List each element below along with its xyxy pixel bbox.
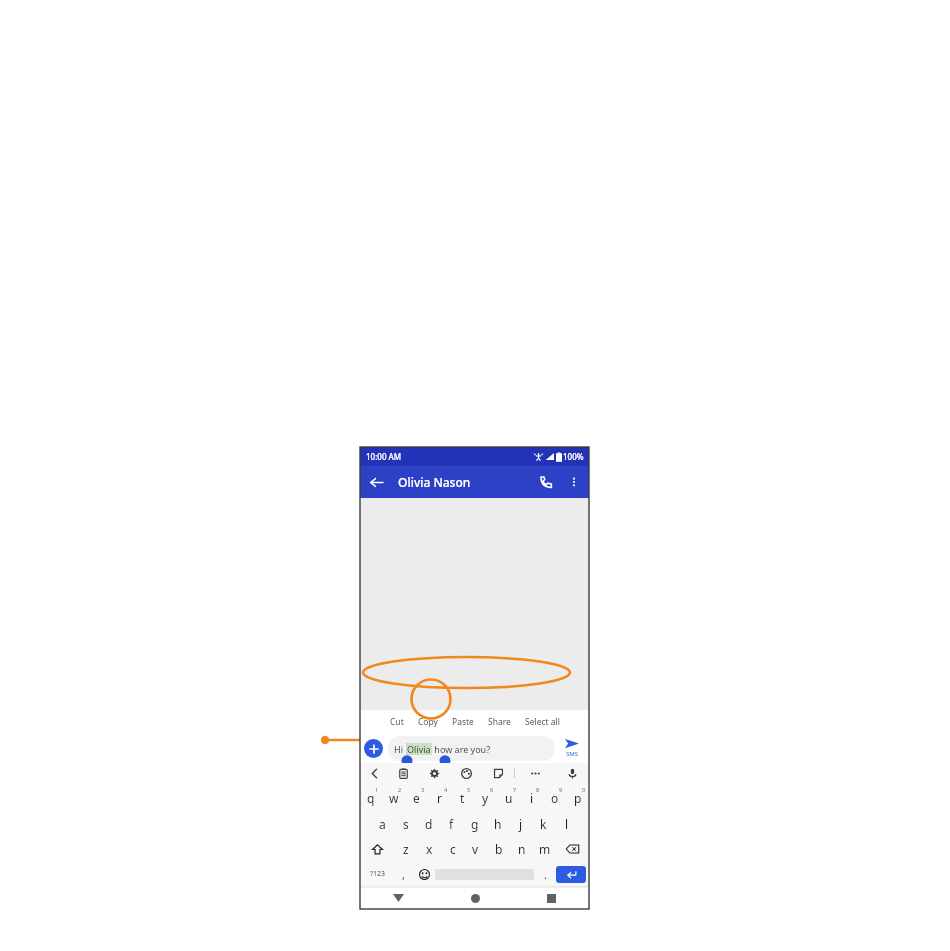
- staticText: 0: [582, 786, 586, 793]
- button[interactable]: n: [510, 838, 533, 860]
- button[interactable]: Previous: [360, 763, 388, 783]
- button[interactable]: h: [486, 813, 509, 835]
- button[interactable]: Sticker: [482, 763, 514, 783]
- button[interactable]: x: [418, 838, 441, 860]
- button[interactable]: Recent apps: [513, 887, 589, 909]
- button[interactable]: Back: [360, 466, 392, 498]
- button[interactable]: Clipboard: [388, 763, 418, 783]
- staticText: Copy: [418, 716, 438, 728]
- button[interactable]: f: [440, 813, 463, 835]
- button[interactable]: Backspace: [556, 838, 589, 860]
- staticText: how are you?: [432, 743, 491, 755]
- button[interactable]: e: [405, 785, 428, 810]
- button[interactable]: k: [532, 813, 555, 835]
- button[interactable]: Settings: [418, 763, 450, 783]
- staticText: a: [379, 816, 386, 832]
- staticText: ,: [402, 867, 405, 882]
- staticText: i: [530, 790, 534, 806]
- staticText: 100%: [563, 451, 584, 462]
- button[interactable]: y: [474, 785, 497, 810]
- staticText: Hi: [394, 743, 406, 755]
- button[interactable]: s: [394, 813, 417, 835]
- staticText: 10:00 AM: [366, 451, 402, 462]
- staticText: b: [495, 841, 503, 857]
- button[interactable]: Home: [437, 887, 513, 909]
- staticText: d: [425, 816, 433, 832]
- button[interactable]: Cut: [383, 712, 411, 732]
- staticText: 5: [467, 786, 471, 793]
- button[interactable]: c: [441, 838, 464, 860]
- button[interactable]: j: [509, 813, 532, 835]
- button[interactable]: t: [451, 785, 474, 810]
- button[interactable]: More: [515, 763, 555, 783]
- button[interactable]: .: [534, 864, 556, 884]
- staticText: 8: [536, 786, 540, 793]
- staticText: g: [471, 816, 479, 832]
- staticText: Select all: [525, 716, 560, 728]
- button[interactable]: Voice input: [555, 763, 589, 783]
- staticText: l: [565, 816, 569, 832]
- staticText: e: [413, 790, 420, 806]
- staticText: 2: [398, 786, 402, 793]
- button[interactable]: Theme: [450, 763, 482, 783]
- button[interactable]: Call: [531, 467, 561, 497]
- staticText: t: [460, 790, 465, 806]
- staticText: 3: [421, 786, 425, 793]
- staticText: 6: [490, 786, 494, 793]
- staticText: Olivia: [407, 743, 431, 755]
- staticText: x: [426, 841, 433, 857]
- button[interactable]: l: [555, 813, 578, 835]
- staticText: 4: [444, 786, 448, 793]
- button[interactable]: Send SMS: [559, 739, 585, 758]
- staticText: k: [540, 816, 547, 832]
- button[interactable]: v: [464, 838, 487, 860]
- button[interactable]: ,: [393, 864, 413, 884]
- staticText: c: [450, 841, 456, 857]
- staticText: Share: [488, 716, 511, 728]
- staticText: .: [544, 867, 547, 882]
- staticText: p: [574, 790, 582, 806]
- staticText: r: [437, 790, 442, 806]
- staticText: q: [367, 790, 375, 806]
- button[interactable]: a: [371, 813, 394, 835]
- button[interactable]: Paste: [445, 712, 481, 732]
- button[interactable]: w: [382, 785, 405, 810]
- staticText: j: [519, 816, 523, 832]
- staticText: ?123: [370, 869, 386, 879]
- staticText: f: [449, 816, 454, 832]
- button[interactable]: r: [428, 785, 451, 810]
- staticText: m: [539, 841, 551, 857]
- staticText: u: [505, 790, 513, 806]
- button[interactable]: Emoji: [413, 864, 435, 884]
- button[interactable]: z: [394, 838, 418, 860]
- button[interactable]: Select all: [518, 712, 567, 732]
- button[interactable]: Hi: [388, 736, 555, 761]
- staticText: 7: [513, 786, 517, 793]
- staticText: Cut: [390, 716, 404, 728]
- staticText: v: [472, 841, 479, 857]
- button[interactable]: More options: [561, 469, 587, 495]
- button[interactable]: i: [520, 785, 543, 810]
- button[interactable]: p: [566, 785, 589, 810]
- button[interactable]: g: [463, 813, 486, 835]
- button[interactable]: Olivia Nason: [398, 474, 531, 490]
- button[interactable]: Back: [360, 887, 437, 909]
- button[interactable]: q: [360, 785, 382, 810]
- staticText: z: [403, 841, 409, 857]
- staticText: o: [551, 790, 559, 806]
- staticText: 9: [559, 786, 563, 793]
- button[interactable]: d: [417, 813, 440, 835]
- button[interactable]: b: [487, 838, 510, 860]
- button[interactable]: u: [497, 785, 520, 810]
- button[interactable]: o: [543, 785, 566, 810]
- button[interactable]: Copy: [411, 712, 445, 732]
- button[interactable]: Share: [481, 712, 518, 732]
- staticText: w: [389, 790, 399, 806]
- staticText: SMS: [566, 750, 579, 758]
- button[interactable]: Shift: [360, 838, 394, 860]
- button[interactable]: ?123: [363, 864, 393, 884]
- button[interactable]: Attach: [364, 739, 383, 758]
- button[interactable]: Enter: [556, 866, 586, 883]
- button[interactable]: m: [533, 838, 556, 860]
